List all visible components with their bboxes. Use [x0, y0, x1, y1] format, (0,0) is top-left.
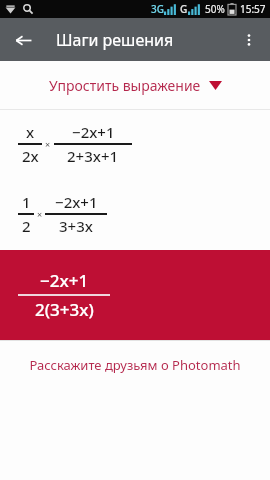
staticText: 2x [22, 146, 39, 166]
staticText: 1 [22, 192, 31, 212]
staticText: × [37, 208, 43, 220]
staticText: 15:57 [240, 2, 266, 16]
staticText: 2 [22, 216, 31, 236]
button[interactable]: Упростить выражение [0, 61, 270, 109]
button[interactable]: More options [232, 23, 266, 57]
staticText: 2(3+3x) [35, 298, 94, 321]
staticText: 2+3x+1 [67, 146, 119, 166]
staticText: × [45, 138, 51, 150]
button[interactable]: −2x+1 [0, 250, 270, 340]
button[interactable]: 1 [0, 178, 270, 250]
staticText: 50% [205, 2, 225, 16]
staticText: x [26, 122, 35, 142]
staticText: G [180, 2, 188, 16]
staticText: 3+3x [59, 216, 93, 236]
staticText: −2x+1 [55, 192, 98, 212]
staticText: Шаги решения [56, 29, 174, 51]
staticText: Расскажите друзьям о Photomath [29, 356, 241, 374]
staticText: 3G [151, 2, 164, 16]
staticText: −2x+1 [40, 269, 89, 292]
button[interactable]: Расскажите друзьям о Photomath [0, 341, 270, 389]
button[interactable]: Back [6, 23, 40, 57]
button[interactable]: x [0, 110, 270, 178]
staticText: Упростить выражение [49, 76, 201, 95]
staticText: −2x+1 [72, 122, 115, 142]
